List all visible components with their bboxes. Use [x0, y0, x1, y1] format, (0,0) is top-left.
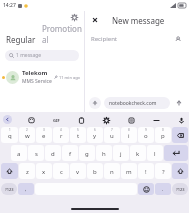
staticText: Recipient — [91, 35, 118, 43]
button[interactable]: Settings — [101, 115, 111, 125]
button[interactable]: 0 — [155, 127, 171, 143]
staticText: d — [51, 150, 55, 158]
button[interactable]: 3 — [36, 127, 52, 143]
button[interactable]: Regular — [5, 34, 37, 45]
button[interactable]: d — [45, 145, 61, 161]
button[interactable]: 9 — [138, 127, 154, 143]
button[interactable]: s — [28, 145, 44, 161]
button[interactable]: Add attachment — [89, 97, 101, 109]
staticText: 5 — [77, 128, 79, 132]
button[interactable]: ?123 — [1, 183, 17, 195]
button[interactable]: 1 — [1, 127, 18, 143]
button[interactable]: Promotional — [41, 23, 84, 45]
staticText: y — [93, 132, 97, 140]
button[interactable]: ! — [138, 163, 154, 179]
button[interactable]: 2 — [19, 127, 35, 143]
button[interactable]: Shift — [1, 163, 18, 179]
button[interactable]: Shift — [172, 163, 188, 179]
staticText: o — [144, 132, 148, 140]
button[interactable]: Emoji — [138, 183, 154, 195]
staticText: MMS Service — [22, 78, 52, 85]
staticText: s — [35, 150, 38, 158]
staticText: 7 — [111, 128, 113, 132]
staticText: k — [136, 150, 140, 158]
button[interactable]: Close — [89, 14, 101, 26]
staticText: q — [8, 132, 12, 140]
button[interactable]: 1 message — [5, 50, 79, 61]
button[interactable]: c — [53, 163, 69, 179]
staticText: n — [110, 168, 114, 176]
staticText: r — [60, 132, 63, 140]
staticText: , — [25, 186, 27, 193]
staticText: u — [110, 132, 114, 140]
staticText: i — [128, 132, 130, 140]
button[interactable]: Telekom — [0, 67, 84, 87]
button[interactable]: ? — [155, 163, 171, 179]
staticText: ? — [162, 168, 165, 176]
staticText: c — [60, 168, 63, 176]
staticText: GIF — [53, 118, 60, 123]
button[interactable]: x — [36, 163, 52, 179]
button[interactable]: Theme — [126, 115, 136, 125]
button[interactable]: v — [70, 163, 86, 179]
staticText: notebookcheck.com — [109, 100, 157, 107]
button[interactable]: m — [121, 163, 137, 179]
button[interactable]: 4 — [53, 127, 69, 143]
button[interactable]: Enter — [164, 145, 188, 161]
button[interactable]: Stickers — [26, 115, 36, 125]
staticText: e — [42, 132, 46, 140]
button[interactable]: 6 — [87, 127, 103, 143]
button[interactable]: Clipboard — [76, 115, 86, 125]
staticText: m — [126, 168, 132, 176]
staticText: 4 — [60, 128, 62, 132]
button[interactable]: n — [104, 163, 120, 179]
button[interactable]: Send — [173, 97, 185, 109]
button[interactable]: 8 — [121, 127, 137, 143]
staticText: p — [161, 132, 165, 140]
button[interactable]: g — [79, 145, 95, 161]
button[interactable]: ?123 — [172, 183, 188, 195]
button[interactable]: notebookcheck.com — [104, 97, 170, 109]
staticText: 0 — [162, 128, 164, 132]
button[interactable]: , — [18, 183, 34, 195]
staticText: f — [69, 150, 72, 158]
button[interactable]: b — [87, 163, 103, 179]
button[interactable]: More — [151, 115, 161, 125]
button[interactable]: 5 — [70, 127, 86, 143]
staticText: w — [25, 132, 30, 140]
staticText: j — [120, 150, 122, 158]
staticText: a — [17, 150, 21, 158]
button[interactable]: a — [11, 145, 27, 161]
button[interactable]: Backspace — [172, 127, 188, 143]
staticText: 9 — [145, 128, 147, 132]
staticText: z — [26, 168, 29, 176]
staticText: 11 min ago — [59, 75, 81, 80]
staticText: ?123 — [176, 187, 185, 192]
staticText: l — [154, 150, 156, 158]
button[interactable]: Add contact — [173, 34, 184, 45]
staticText: Regular — [6, 34, 36, 45]
staticText: 2 — [26, 128, 28, 132]
staticText: 1 — [9, 128, 11, 132]
button[interactable]: Recipient — [91, 32, 184, 46]
button[interactable]: z — [19, 163, 35, 179]
button[interactable]: l — [147, 145, 163, 161]
staticText: t — [77, 132, 80, 140]
staticText: 1 message — [16, 52, 42, 59]
staticText: 6 — [94, 128, 96, 132]
staticText: . — [162, 186, 164, 193]
button[interactable]: 7 — [104, 127, 120, 143]
button[interactable]: j — [113, 145, 129, 161]
button[interactable]: k — [130, 145, 146, 161]
button[interactable]: h — [96, 145, 112, 161]
button[interactable]: Expand toolbar — [3, 115, 12, 124]
staticText: x — [42, 168, 46, 176]
button[interactable]: . — [155, 183, 171, 195]
button[interactable]: GIF — [51, 115, 61, 125]
button[interactable]: Voice input — [176, 115, 186, 125]
staticText: h — [102, 150, 106, 158]
button[interactable]: f — [62, 145, 78, 161]
button[interactable]: Settings — [69, 12, 80, 23]
staticText: 8 — [128, 128, 130, 132]
